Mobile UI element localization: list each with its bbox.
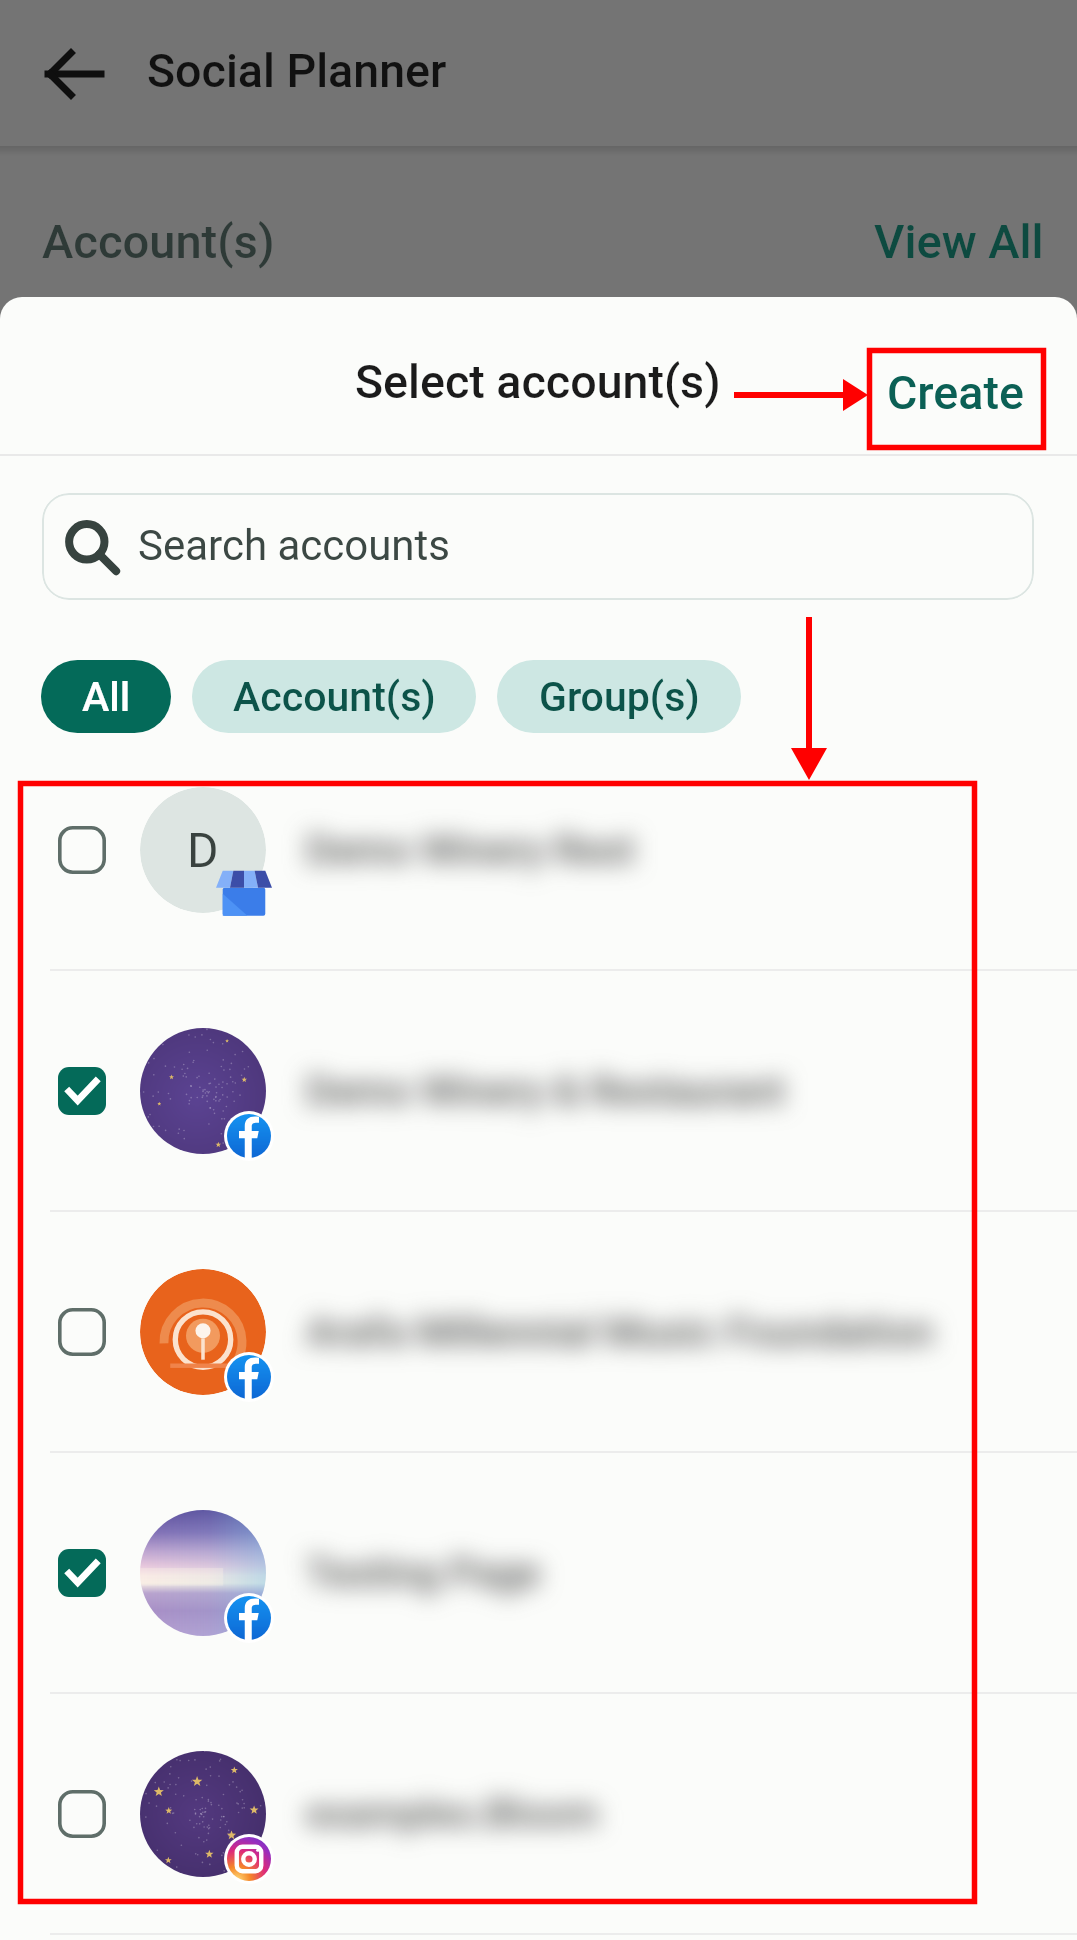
staticText: D bbox=[187, 822, 219, 878]
staticText: Select account(s) bbox=[355, 355, 721, 409]
staticText: View All bbox=[874, 214, 1044, 269]
staticText: Search accounts bbox=[138, 521, 450, 570]
button[interactable]: Account(s) bbox=[192, 660, 476, 733]
staticText: Account(s) bbox=[42, 214, 275, 269]
button[interactable]: All bbox=[41, 660, 171, 733]
staticText: Account(s) bbox=[233, 673, 436, 721]
staticText: All bbox=[82, 673, 131, 721]
button[interactable]: Testing Page bbox=[0, 1453, 1077, 1692]
staticText: Group(s) bbox=[539, 673, 700, 721]
staticText: examples.Bloom bbox=[306, 1791, 599, 1837]
staticText: Social Planner bbox=[147, 44, 447, 98]
button[interactable]: Arafa Millennial Music Foundation bbox=[0, 1212, 1077, 1451]
button[interactable]: View All bbox=[860, 206, 1058, 277]
button[interactable]: D bbox=[0, 730, 1077, 969]
button[interactable]: Demo Winery & Restaurant bbox=[0, 971, 1077, 1210]
button[interactable]: Back bbox=[44, 44, 104, 104]
button[interactable]: examples.Bloom bbox=[0, 1694, 1077, 1933]
staticText: Arafa Millennial Music Foundation bbox=[306, 1308, 934, 1356]
staticText: Demo Winery & Restaurant bbox=[306, 1068, 785, 1115]
button[interactable]: Group(s) bbox=[497, 660, 741, 733]
staticText: Demo Winery Rest bbox=[306, 827, 635, 874]
button[interactable]: Search accounts bbox=[42, 493, 1034, 600]
staticText: Create bbox=[887, 366, 1024, 420]
button[interactable]: Create bbox=[871, 347, 1040, 439]
staticText: Testing Page bbox=[306, 1550, 541, 1597]
